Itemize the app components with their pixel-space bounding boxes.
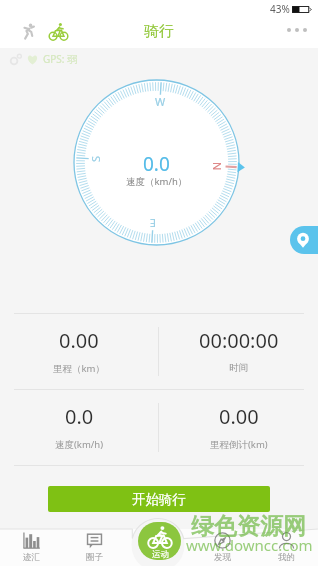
button[interactable]: 0.00	[0, 313, 158, 388]
button[interactable]: 0.0	[0, 389, 158, 464]
staticText: 00:00:00	[199, 327, 279, 354]
staticText: 里程（km）	[53, 362, 105, 375]
staticText: 速度（km/h）	[126, 175, 188, 188]
staticText: 43%	[270, 2, 290, 16]
staticText: 圈子	[86, 552, 103, 563]
staticText: S	[88, 155, 103, 162]
staticText: 速度(km/h)	[55, 438, 104, 451]
staticText: 开始骑行	[132, 491, 186, 508]
staticText: 0.0	[65, 403, 94, 430]
staticText: 里程倒计(km)	[210, 438, 268, 451]
staticText: 我的	[278, 552, 295, 563]
staticText: E	[149, 216, 156, 231]
button[interactable]: 迹汇	[0, 528, 63, 566]
staticText: 0.0	[143, 151, 170, 177]
button[interactable]: 0.00	[159, 389, 318, 464]
button[interactable]: Cycling	[46, 19, 70, 43]
staticText: 0.00	[59, 327, 99, 354]
button[interactable]: Map location	[290, 226, 318, 254]
staticText: 绿色资源网	[191, 512, 306, 541]
staticText: N	[210, 162, 225, 171]
staticText: W	[155, 94, 166, 109]
button[interactable]: 发现	[190, 528, 254, 566]
button[interactable]: More options	[282, 15, 312, 45]
staticText: 0.00	[219, 403, 259, 430]
button[interactable]: 我的	[254, 528, 318, 566]
button[interactable]: 圈子	[63, 528, 126, 566]
staticText: 运动	[152, 549, 169, 560]
staticText: GPS: 弱	[43, 52, 78, 66]
staticText: 发现	[214, 552, 231, 563]
staticText: 时间	[229, 362, 248, 374]
button[interactable]: 运动	[138, 522, 181, 560]
staticText: 骑行	[144, 22, 174, 41]
button[interactable]: Running	[15, 19, 39, 43]
staticText: www.downcc.com	[186, 535, 313, 555]
button[interactable]: 开始骑行	[48, 486, 270, 512]
button[interactable]: 00:00:00	[159, 313, 318, 388]
staticText: 迹汇	[23, 552, 40, 563]
